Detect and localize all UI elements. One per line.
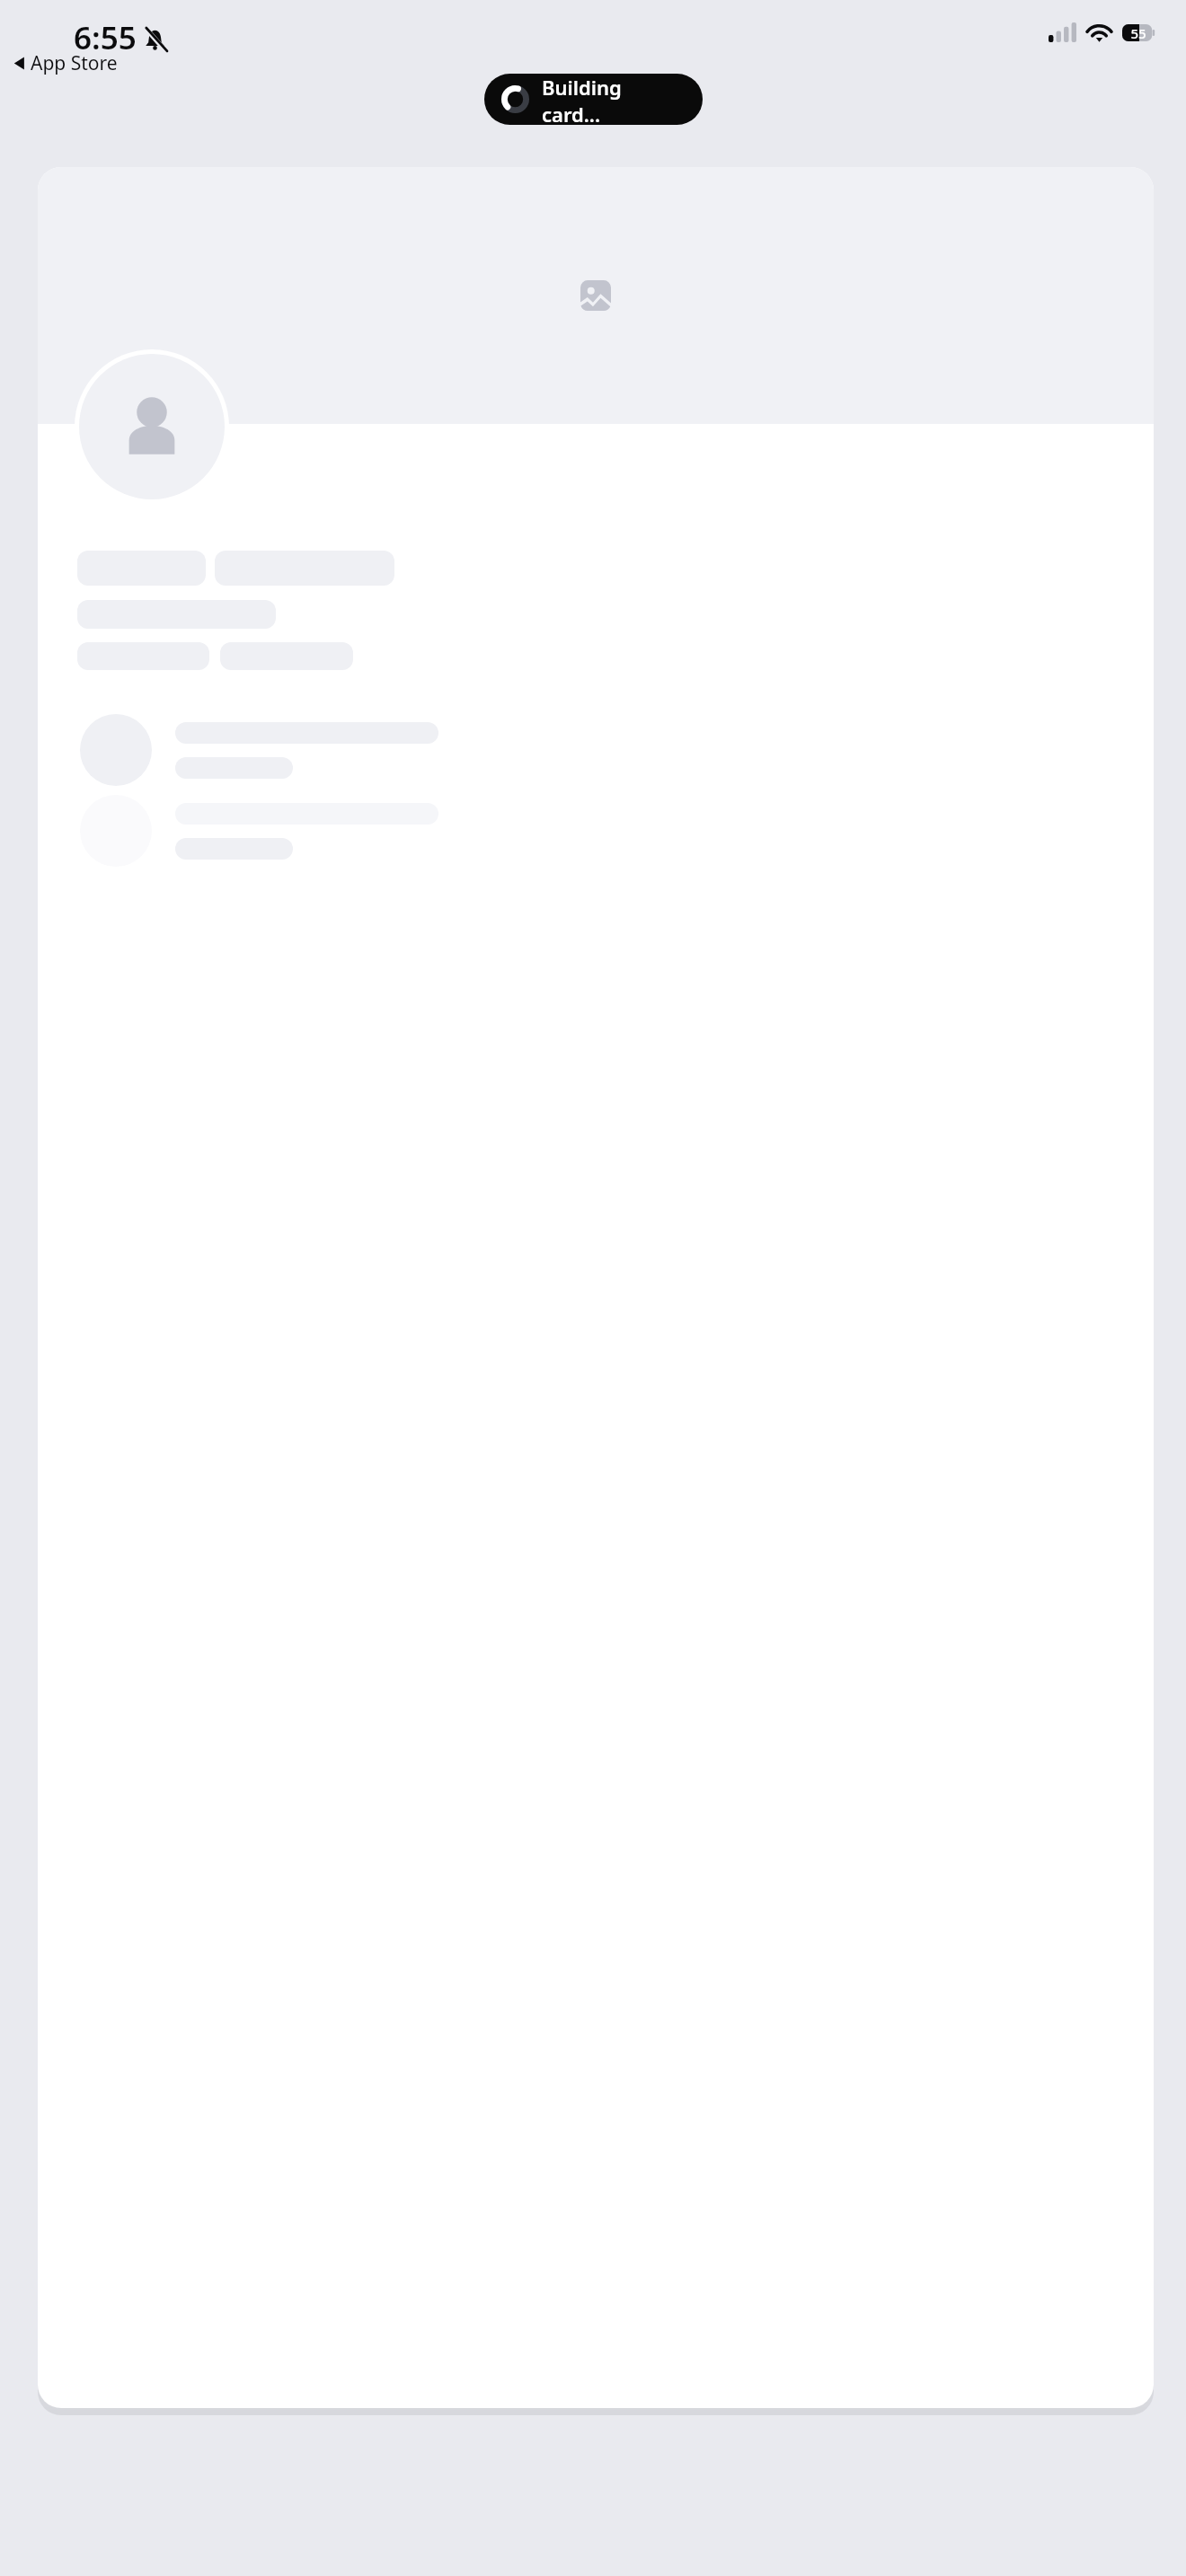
button[interactable]: Loading [484, 74, 703, 125]
staticText: 55 [1130, 24, 1146, 41]
button[interactable]: App Store [13, 50, 118, 76]
button[interactable] [38, 714, 1154, 786]
other: Loading [501, 85, 529, 113]
other: Profile photo placeholder [117, 392, 187, 462]
other: Image placeholder [580, 280, 611, 311]
staticText: App Store [31, 50, 118, 76]
staticText: 6:55 [74, 16, 137, 59]
staticText: Building card... [542, 74, 685, 125]
button[interactable]: Image placeholder [38, 167, 1154, 2408]
button[interactable] [38, 795, 1154, 867]
